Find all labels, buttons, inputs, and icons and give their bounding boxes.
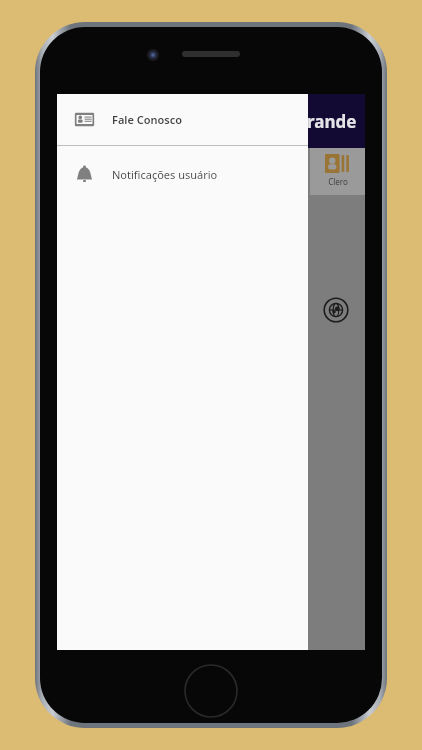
button[interactable]: Fale Conosco [57,94,308,145]
button[interactable]: Clero [310,148,365,195]
staticText: Notificações usuário [112,167,218,182]
staticText: Clero [328,176,348,187]
button[interactable]: Language [322,296,350,324]
staticText: rande [307,110,357,133]
staticText: Fale Conosco [112,112,183,127]
button[interactable]: Notificações usuário [57,146,308,202]
button[interactable]: Home [184,664,238,718]
